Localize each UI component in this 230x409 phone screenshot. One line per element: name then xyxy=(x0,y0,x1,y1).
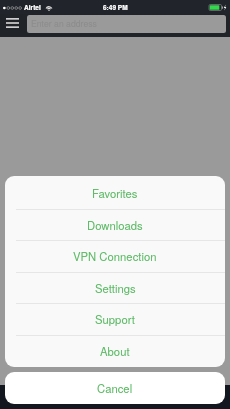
staticText: About xyxy=(100,343,130,359)
button[interactable]: Cancel xyxy=(5,372,225,404)
staticText: Support xyxy=(95,311,135,327)
other: Battery xyxy=(209,4,227,11)
button[interactable]: VPN Connection xyxy=(5,240,225,272)
button[interactable]: Menu xyxy=(0,14,27,37)
staticText: Enter an address xyxy=(31,17,97,29)
button[interactable]: About xyxy=(5,335,225,367)
staticText: 6:49 PM xyxy=(103,3,128,12)
staticText: Downloads xyxy=(87,217,143,233)
button[interactable]: Enter an address xyxy=(27,15,226,33)
staticText: Favorites xyxy=(92,185,138,201)
button[interactable]: Settings xyxy=(5,272,225,304)
button[interactable]: Support xyxy=(5,303,225,335)
button[interactable]: Favorites xyxy=(5,176,225,209)
staticText: Airtel xyxy=(24,3,41,12)
staticText: Settings xyxy=(95,280,136,296)
staticText: Cancel xyxy=(97,380,133,396)
button[interactable]: Downloads xyxy=(5,209,225,241)
staticText: VPN Connection xyxy=(73,248,157,264)
